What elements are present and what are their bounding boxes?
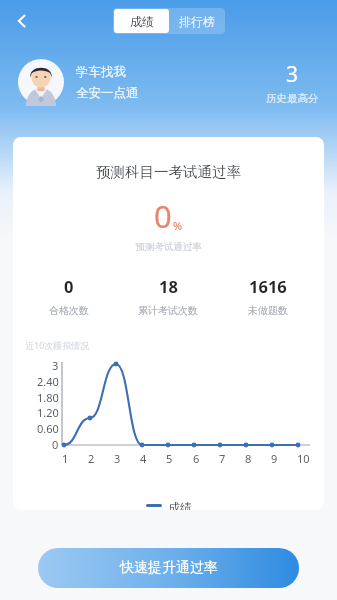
button[interactable]: Back bbox=[2, 1, 42, 41]
staticText: 未做题数 bbox=[248, 304, 288, 317]
staticText: 9 bbox=[271, 451, 278, 466]
staticText: 18 bbox=[159, 275, 178, 297]
staticText: 1616 bbox=[249, 275, 287, 297]
staticText: 3 bbox=[114, 451, 121, 466]
staticText: 快速提升通过率 bbox=[120, 559, 218, 577]
button[interactable]: 排行榜 bbox=[169, 9, 224, 33]
button[interactable]: 快速提升通过率 bbox=[38, 548, 299, 588]
staticText: 0.60 bbox=[37, 421, 59, 436]
staticText: 3 bbox=[286, 60, 299, 89]
staticText: 历史最高分 bbox=[266, 92, 319, 105]
staticText: 7 bbox=[219, 451, 226, 466]
staticText: 1.80 bbox=[37, 390, 59, 405]
staticText: 近10次模拟情况 bbox=[25, 339, 90, 351]
staticText: 0 bbox=[64, 275, 74, 297]
staticText: 0 bbox=[154, 195, 172, 237]
staticText: 1 bbox=[62, 451, 69, 466]
staticText: 学车找我 bbox=[76, 64, 126, 80]
staticText: 1.20 bbox=[37, 405, 59, 420]
staticText: 8 bbox=[245, 451, 252, 466]
staticText: 4 bbox=[140, 451, 147, 466]
button[interactable]: 1616 bbox=[218, 275, 318, 317]
staticText: 5 bbox=[166, 451, 173, 466]
staticText: 预测考试通过率 bbox=[13, 241, 324, 253]
staticText: 2.40 bbox=[37, 374, 59, 389]
button[interactable]: 0 bbox=[19, 275, 118, 317]
staticText: 2 bbox=[88, 451, 95, 466]
staticText: 10 bbox=[297, 451, 310, 466]
staticText: 6 bbox=[193, 451, 200, 466]
staticText: % bbox=[173, 218, 183, 233]
staticText: 全安一点通 bbox=[76, 85, 139, 101]
staticText: 累计考试次数 bbox=[138, 304, 198, 317]
staticText: 排行榜 bbox=[179, 14, 215, 29]
staticText: 预测科目一考试通过率 bbox=[13, 163, 324, 181]
staticText: 3 bbox=[52, 358, 59, 373]
button[interactable]: 18 bbox=[118, 275, 218, 317]
staticText: 成绩 bbox=[130, 14, 154, 29]
staticText: 0 bbox=[52, 437, 59, 452]
staticText: 成绩 bbox=[168, 500, 192, 510]
button[interactable]: 成绩 bbox=[114, 9, 169, 33]
staticText: 合格次数 bbox=[49, 304, 89, 317]
